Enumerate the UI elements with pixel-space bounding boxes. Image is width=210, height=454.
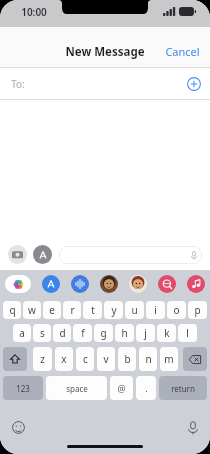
button[interactable]: App Store xyxy=(42,275,60,293)
staticText: l xyxy=(186,326,189,340)
button[interactable]: g xyxy=(94,324,113,342)
button[interactable]: Cancel xyxy=(155,38,210,65)
button[interactable]: b xyxy=(118,347,136,371)
staticText: space xyxy=(66,383,88,394)
staticText: c xyxy=(83,352,88,366)
button[interactable]: Camera xyxy=(8,245,27,264)
button[interactable]: . xyxy=(136,376,156,400)
button[interactable]: q xyxy=(3,301,21,319)
button[interactable]: w xyxy=(23,301,41,319)
button[interactable]: Memoji sticker xyxy=(129,275,147,293)
button[interactable]: e xyxy=(43,301,61,319)
button[interactable]: f xyxy=(73,324,92,342)
staticText: To: xyxy=(11,77,25,91)
staticText: y xyxy=(111,303,117,317)
staticText: f xyxy=(81,326,85,340)
staticText: x xyxy=(61,352,67,366)
staticText: q xyxy=(9,303,16,317)
staticText: Cancel xyxy=(165,44,200,59)
staticText: g xyxy=(100,326,107,340)
button[interactable]: v xyxy=(97,347,115,371)
button[interactable]: s xyxy=(33,324,51,342)
staticText: d xyxy=(59,326,66,340)
button[interactable]: m xyxy=(160,347,178,371)
button[interactable]: Images xyxy=(158,275,176,293)
button[interactable]: Dictation xyxy=(188,421,198,435)
staticText: v xyxy=(103,352,109,366)
staticText: k xyxy=(164,326,170,340)
button[interactable]: o xyxy=(167,301,186,319)
staticText: . xyxy=(145,382,148,394)
button[interactable]: Audio message xyxy=(71,275,89,293)
staticText: z xyxy=(40,352,45,366)
button[interactable]: space xyxy=(46,376,107,400)
button[interactable]: n xyxy=(139,347,157,371)
button[interactable]: Photos xyxy=(5,275,31,293)
button[interactable]: a xyxy=(13,324,31,342)
staticText: 10:00 xyxy=(21,5,47,19)
button[interactable]: Add contact xyxy=(187,77,201,91)
staticText: i xyxy=(154,303,157,317)
button[interactable]: Memoji xyxy=(100,275,118,293)
button[interactable]: x xyxy=(55,347,73,371)
button[interactable]: Emoji xyxy=(12,421,25,434)
staticText: r xyxy=(70,303,75,317)
staticText: p xyxy=(194,303,201,317)
staticText: @ xyxy=(117,382,126,394)
staticText: u xyxy=(131,303,138,317)
staticText: 123 xyxy=(16,383,30,394)
staticText: b xyxy=(124,352,131,366)
button[interactable]: Music xyxy=(187,275,205,293)
staticText: n xyxy=(145,352,152,366)
button[interactable]: y xyxy=(104,301,123,319)
staticText: s xyxy=(40,326,45,340)
button[interactable]: u xyxy=(125,301,144,319)
button[interactable]: @ xyxy=(110,376,133,400)
staticText: o xyxy=(173,303,180,317)
staticText: a xyxy=(19,326,25,340)
button[interactable]: return xyxy=(159,376,207,400)
button[interactable]: l xyxy=(178,324,197,342)
staticText: e xyxy=(49,303,55,317)
button[interactable]: App Store xyxy=(33,245,52,264)
staticText: m xyxy=(164,352,174,366)
button[interactable]: p xyxy=(188,301,207,319)
staticText: return xyxy=(171,383,195,394)
button[interactable]: r xyxy=(63,301,81,319)
staticText: h xyxy=(121,326,128,340)
staticText: j xyxy=(144,326,147,340)
button[interactable]: d xyxy=(53,324,71,342)
button[interactable]: c xyxy=(76,347,94,371)
staticText: New Message xyxy=(65,44,145,60)
button[interactable]: k xyxy=(157,324,176,342)
button[interactable]: 123 xyxy=(3,376,43,400)
button[interactable]: Delete xyxy=(183,347,207,371)
button[interactable]: j xyxy=(136,324,155,342)
button[interactable] xyxy=(59,246,202,264)
button[interactable]: i xyxy=(146,301,165,319)
button[interactable]: t xyxy=(83,301,102,319)
button[interactable]: h xyxy=(115,324,134,342)
staticText: t xyxy=(91,303,95,317)
staticText: w xyxy=(28,303,36,317)
button[interactable]: z xyxy=(33,347,52,371)
button[interactable]: To: xyxy=(0,68,210,100)
button[interactable]: Shift xyxy=(3,347,27,371)
